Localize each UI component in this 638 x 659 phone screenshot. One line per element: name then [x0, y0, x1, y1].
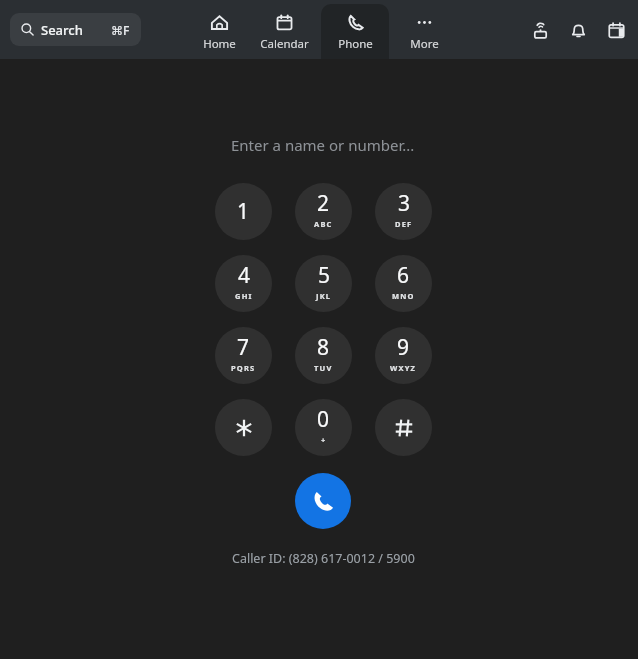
staticText: Caller ID: (828) 617-0012 / 5900: [232, 550, 415, 567]
button[interactable]: 7: [215, 327, 272, 384]
staticText: Enter a name or number...: [231, 135, 415, 155]
button[interactable]: 4: [215, 255, 272, 312]
staticText: 9: [397, 333, 410, 362]
staticText: +: [321, 435, 327, 445]
button[interactable]: 8: [295, 327, 352, 384]
staticText: 3: [398, 189, 411, 218]
staticText: 6: [397, 261, 410, 290]
staticText: DEF: [395, 219, 413, 229]
staticText: 4: [238, 261, 251, 290]
button[interactable]: Phone: [321, 4, 389, 59]
staticText: WXYZ: [390, 363, 417, 373]
button[interactable]: 0: [295, 399, 352, 456]
button[interactable]: Panel: [604, 18, 628, 42]
button[interactable]: [375, 399, 432, 456]
button[interactable]: 3: [375, 183, 432, 240]
staticText: PQRS: [231, 363, 256, 373]
button[interactable]: 5: [295, 255, 352, 312]
staticText: MNO: [392, 291, 415, 301]
staticText: Home: [203, 36, 236, 52]
staticText: Calendar: [260, 36, 309, 52]
staticText: 7: [237, 333, 250, 362]
staticText: 1: [237, 197, 250, 226]
staticText: More: [410, 36, 439, 52]
staticText: ABC: [314, 219, 333, 229]
button[interactable]: Home: [192, 4, 247, 59]
button[interactable]: More: [389, 4, 459, 59]
staticText: 0: [317, 405, 330, 434]
button[interactable]: Call: [295, 473, 351, 529]
button[interactable]: Search: [10, 13, 141, 46]
staticText: Search: [41, 21, 83, 39]
staticText: GHI: [235, 291, 253, 301]
staticText: 5: [318, 261, 331, 290]
button[interactable]: 9: [375, 327, 432, 384]
staticText: 2: [317, 189, 330, 218]
button[interactable]: 6: [375, 255, 432, 312]
staticText: 8: [317, 333, 330, 362]
staticText: TUV: [314, 363, 333, 373]
button[interactable]: Calendar: [247, 4, 321, 59]
staticText: JKL: [316, 291, 332, 301]
button[interactable]: [215, 399, 272, 456]
button[interactable]: 1: [215, 183, 272, 240]
staticText: ⌘F: [111, 22, 130, 38]
button[interactable]: 2: [295, 183, 352, 240]
button[interactable]: Devices: [528, 18, 552, 42]
staticText: Phone: [338, 36, 373, 52]
button[interactable]: Notifications: [566, 18, 590, 42]
